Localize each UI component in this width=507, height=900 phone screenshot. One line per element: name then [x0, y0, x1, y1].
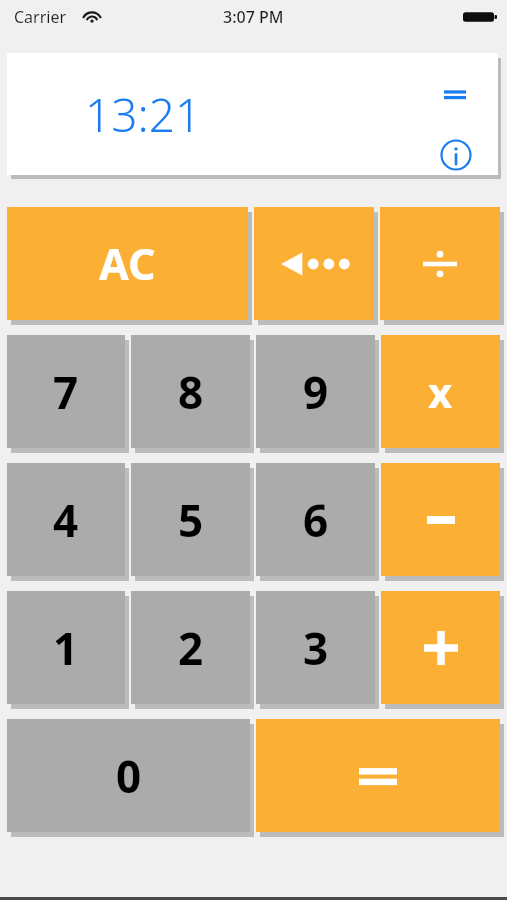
- staticText: 2: [178, 618, 204, 678]
- staticText: x: [428, 363, 453, 420]
- staticText: 7: [53, 362, 79, 422]
- button[interactable]: 13:21: [7, 53, 498, 175]
- button[interactable]: Multiply: [381, 335, 500, 448]
- staticText: 8: [178, 362, 204, 422]
- button[interactable]: 4: [7, 463, 125, 576]
- staticText: 13:21: [85, 83, 202, 146]
- button[interactable]: 8: [131, 335, 250, 448]
- button[interactable]: 2: [131, 591, 250, 704]
- staticText: Carrier: [14, 6, 67, 28]
- staticText: 4: [53, 490, 79, 550]
- staticText: 5: [178, 490, 204, 550]
- button[interactable]: 5: [131, 463, 250, 576]
- button[interactable]: 9: [256, 335, 375, 448]
- button[interactable]: Add: [381, 591, 500, 704]
- button[interactable]: Backspace: [254, 207, 374, 320]
- button[interactable]: 3: [256, 591, 375, 704]
- button[interactable]: All clear: [7, 207, 248, 320]
- button[interactable]: 1: [7, 591, 125, 704]
- button[interactable]: 0: [7, 719, 250, 832]
- staticText: 1: [53, 618, 79, 678]
- button[interactable]: Equals history: [438, 77, 472, 111]
- staticText: 6: [303, 490, 329, 550]
- button[interactable]: Info: [436, 135, 476, 175]
- staticText: AC: [99, 234, 156, 293]
- button[interactable]: 7: [7, 335, 125, 448]
- staticText: 3: [303, 618, 329, 678]
- button[interactable]: Divide: [380, 207, 500, 320]
- staticText: 0: [116, 746, 142, 806]
- staticText: 9: [303, 362, 329, 422]
- button[interactable]: 6: [256, 463, 375, 576]
- button[interactable]: Subtract: [381, 463, 500, 576]
- staticText: 3:07 PM: [223, 6, 284, 28]
- button[interactable]: Equals: [256, 719, 500, 832]
